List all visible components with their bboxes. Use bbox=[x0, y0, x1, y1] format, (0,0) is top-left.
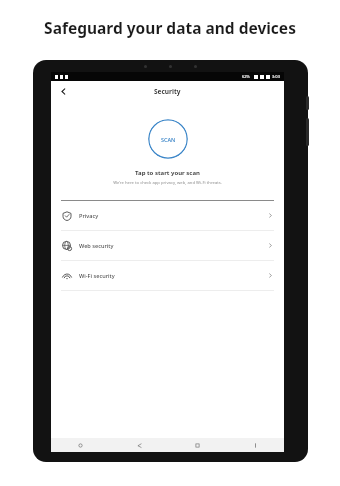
button[interactable]: Home bbox=[168, 438, 226, 452]
staticText: 3:03 bbox=[272, 74, 280, 79]
staticText: 62% bbox=[242, 74, 250, 79]
button[interactable]: SCAN bbox=[148, 119, 188, 159]
staticText: Safeguard your data and devices bbox=[44, 17, 296, 38]
staticText: Web security bbox=[79, 242, 114, 250]
button[interactable]: Menu bbox=[51, 438, 110, 452]
button[interactable]: Wi-Fi security bbox=[51, 261, 284, 290]
staticText: Tap to start your scan bbox=[135, 169, 200, 177]
button[interactable]: Web security bbox=[51, 231, 284, 260]
staticText: Wi-Fi security bbox=[79, 272, 115, 280]
staticText: Security bbox=[154, 87, 181, 96]
button[interactable]: Back bbox=[110, 438, 168, 452]
staticText: SCAN bbox=[161, 136, 176, 143]
button[interactable]: Privacy bbox=[51, 201, 284, 230]
button[interactable]: Back bbox=[55, 83, 71, 99]
staticText: Privacy bbox=[79, 212, 99, 220]
staticText: We’re here to check app privacy, web, an… bbox=[113, 180, 222, 186]
button[interactable]: Recents bbox=[226, 438, 284, 452]
